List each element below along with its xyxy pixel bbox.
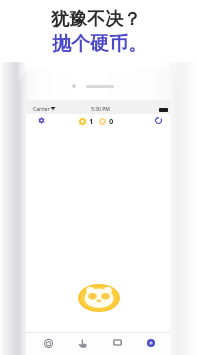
button[interactable]: Coin [134,333,168,355]
staticText: 5:30 PM [91,106,110,113]
button[interactable]: Tap [65,333,99,355]
staticText: 抛个硬币。 [52,32,147,56]
button[interactable]: Settings [34,113,49,128]
staticText: 犹豫不决？ [51,8,141,31]
button[interactable]: Counter [100,333,134,355]
staticText: 1 [89,116,94,126]
staticText: 0 [109,116,114,126]
staticText: Carrier [33,106,50,113]
button[interactable]: Flip the coin [78,284,120,312]
button[interactable]: History [31,333,65,355]
button[interactable]: Reset [151,113,166,128]
